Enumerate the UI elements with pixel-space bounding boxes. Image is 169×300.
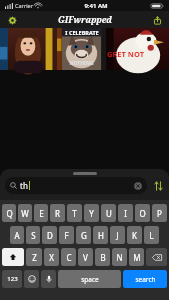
button[interactable]: Q: [2, 204, 16, 222]
staticText: P: [157, 208, 162, 219]
staticText: I: [124, 208, 127, 219]
staticText: Q: [6, 208, 13, 219]
staticText: GIFwrapped: [58, 14, 112, 26]
staticText: M: [133, 252, 141, 263]
button[interactable]: D: [42, 226, 57, 244]
button[interactable]: GRET NOT: [106, 28, 169, 70]
button[interactable]: T: [67, 204, 82, 222]
staticText: I CELEBRATE: [65, 29, 99, 36]
staticText: 123: [7, 275, 18, 283]
button[interactable]: B: [95, 248, 110, 266]
button[interactable]: S: [26, 226, 40, 244]
staticText: Y: [89, 208, 94, 219]
staticText: NOTHING: [69, 60, 94, 67]
button[interactable]: L: [144, 226, 159, 244]
staticText: L: [149, 230, 154, 241]
button[interactable]: Clear text: [133, 181, 142, 190]
staticText: search: [135, 275, 156, 284]
staticText: J: [116, 230, 119, 241]
button[interactable]: V: [78, 248, 93, 266]
staticText: S: [31, 230, 36, 241]
button[interactable]: I: [118, 204, 133, 222]
staticText: C: [66, 252, 72, 263]
staticText: D: [47, 230, 53, 241]
staticText: F: [64, 230, 69, 241]
button[interactable]: space: [58, 270, 121, 288]
button[interactable]: F: [59, 226, 74, 244]
staticText: 9:41 AM: [84, 2, 108, 10]
button[interactable]: P: [152, 204, 167, 222]
button[interactable]: Z: [26, 248, 42, 266]
button[interactable]: search: [123, 270, 167, 288]
staticText: Carrier: [15, 2, 33, 9]
staticText: H: [98, 230, 104, 241]
staticText: X: [49, 252, 54, 263]
button[interactable]: Dictate: [41, 270, 56, 288]
button[interactable]: U: [101, 204, 116, 222]
button[interactable]: E: [34, 204, 48, 222]
staticText: T: [72, 208, 77, 219]
staticText: A: [14, 230, 20, 241]
button[interactable]: C: [61, 248, 76, 266]
staticText: space: [81, 275, 99, 284]
button[interactable]: Backspace: [146, 248, 167, 266]
staticText: U: [106, 208, 112, 219]
button[interactable]: th: [5, 177, 147, 194]
staticText: GRET NOT: [107, 49, 144, 59]
staticText: O: [139, 208, 146, 219]
button[interactable]: O: [135, 204, 150, 222]
button[interactable]: K: [127, 226, 142, 244]
button[interactable]: J: [110, 226, 125, 244]
button[interactable]: 123: [2, 270, 22, 288]
staticText: V: [83, 252, 88, 263]
staticText: Z: [32, 252, 37, 263]
button[interactable]: G: [76, 226, 91, 244]
button[interactable]: X: [44, 248, 59, 266]
button[interactable]: Y: [84, 204, 99, 222]
button[interactable]: N: [112, 248, 127, 266]
button[interactable]: R: [50, 204, 65, 222]
staticText: W: [21, 208, 29, 219]
staticText: G: [81, 230, 87, 241]
staticText: K: [132, 230, 137, 241]
button[interactable]: W: [18, 204, 32, 222]
staticText: B: [100, 252, 106, 263]
staticText: th: [20, 180, 28, 191]
staticText: R: [55, 208, 60, 219]
button[interactable]: H: [93, 226, 108, 244]
button[interactable]: Sort: [152, 178, 164, 194]
staticText: E: [39, 208, 44, 219]
button[interactable]: M: [129, 248, 144, 266]
button[interactable]: Settings: [5, 13, 19, 27]
button[interactable]: I CELEBRATE: [57, 28, 106, 70]
button[interactable]: Emoji: [24, 270, 39, 288]
button[interactable]: [0, 28, 57, 70]
staticText: N: [116, 252, 123, 263]
button[interactable]: Shift: [2, 248, 24, 266]
button[interactable]: Share: [150, 13, 164, 27]
button[interactable]: A: [10, 226, 24, 244]
